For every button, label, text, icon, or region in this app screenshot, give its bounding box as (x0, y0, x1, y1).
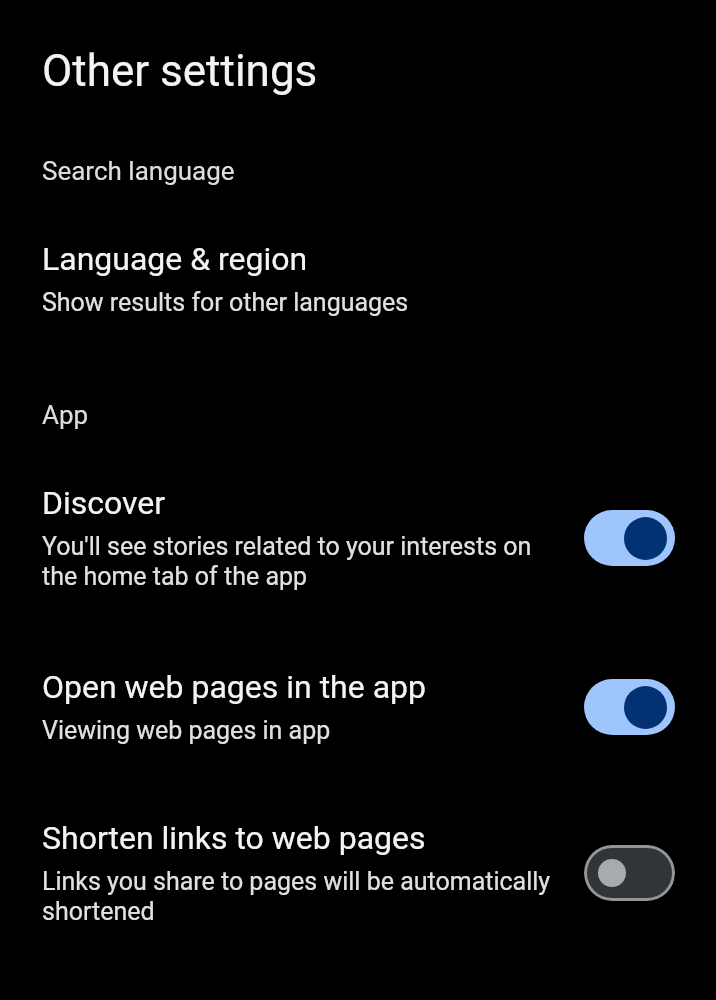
button[interactable]: Discover (0, 484, 716, 591)
button[interactable]: Open web pages in the app (0, 668, 716, 745)
staticText: Search language (42, 156, 235, 186)
staticText: Other settings (42, 45, 318, 97)
staticText: Links you share to pages will be automat… (42, 867, 554, 926)
button[interactable]: Shorten links to web pages (0, 819, 716, 926)
staticText: Discover (42, 484, 166, 522)
staticText: Show results for other languages (42, 288, 409, 317)
staticText: Language & region (42, 240, 308, 278)
button[interactable]: Language & region (0, 240, 716, 317)
staticText: You'll see stories related to your inter… (42, 532, 554, 591)
staticText: Viewing web pages in app (42, 716, 331, 745)
staticText: App (42, 400, 89, 430)
button[interactable]: Shorten links to web pages, off (584, 845, 675, 901)
button[interactable]: Discover, on (584, 510, 675, 566)
staticText: Open web pages in the app (42, 668, 426, 706)
button[interactable]: Open web pages in the app, on (584, 679, 675, 735)
staticText: Shorten links to web pages (42, 819, 426, 857)
